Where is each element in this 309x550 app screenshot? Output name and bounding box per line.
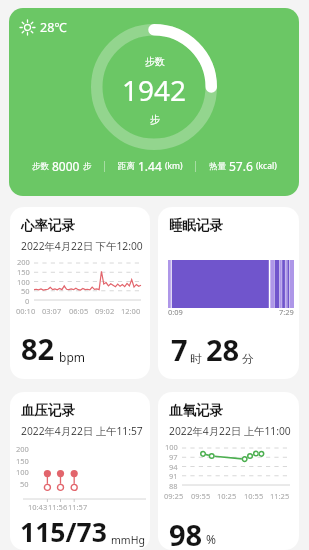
staticText: 2022年4月22日 下午12:00 — [21, 239, 143, 253]
other: Weather — [20, 20, 35, 35]
staticText: (km) — [165, 160, 183, 172]
staticText: 睡眠记录 — [169, 217, 223, 234]
staticText: 1942 — [122, 71, 187, 109]
staticText: 06:05 — [69, 306, 89, 316]
staticText: 97 — [169, 452, 178, 460]
staticText: 8000 — [52, 158, 80, 174]
staticText: mmHg — [111, 533, 145, 547]
staticText: 28℃ — [40, 19, 67, 36]
staticText: 步 — [150, 113, 160, 126]
staticText: 时 — [190, 352, 202, 366]
staticText: 1.44 — [138, 158, 162, 174]
staticText: 00:10 — [16, 306, 36, 316]
staticText: 分 — [242, 352, 254, 366]
staticText: 150 — [16, 456, 29, 466]
button[interactable]: 血压记录 — [10, 392, 150, 550]
staticText: 步数 — [32, 161, 49, 172]
button[interactable]: Weather — [9, 8, 299, 196]
staticText: 09:02 — [95, 306, 115, 316]
staticText: 200 — [17, 257, 30, 265]
staticText: 10:43 — [28, 502, 48, 512]
staticText: 150 — [17, 267, 30, 275]
staticText: 82 — [21, 329, 55, 368]
staticText: 09:55 — [191, 491, 211, 501]
staticText: % — [206, 531, 216, 547]
staticText: 心率记录 — [21, 217, 75, 234]
staticText: 10:55 — [244, 491, 264, 501]
staticText: 50 — [20, 479, 29, 489]
staticText: 09:25 — [164, 491, 184, 501]
staticText: bpm — [59, 349, 85, 365]
staticText: 血氧记录 — [169, 402, 223, 419]
staticText: 7 — [171, 330, 188, 369]
staticText: 0:09 — [168, 307, 183, 317]
staticText: 100 — [165, 442, 178, 450]
staticText: 10:25 — [217, 491, 237, 501]
staticText: 100 — [17, 277, 30, 285]
staticText: (kcal) — [256, 160, 277, 172]
staticText: 91 — [169, 471, 178, 479]
staticText: 2022年4月22日 上午11:57 — [21, 424, 143, 438]
staticText: 100 — [16, 467, 29, 477]
staticText: 28 — [206, 330, 240, 369]
staticText: 50 — [21, 286, 30, 294]
staticText: 步 — [83, 161, 92, 172]
staticText: 距离 — [118, 161, 135, 172]
staticText: 2022年4月22日 上午11:00 — [169, 424, 291, 438]
staticText: 11:57 — [68, 502, 88, 512]
staticText: 94 — [169, 462, 178, 470]
button[interactable]: 心率记录 — [10, 207, 150, 379]
staticText: 7:29 — [279, 307, 294, 317]
staticText: 血压记录 — [21, 402, 75, 419]
staticText: 115/73 — [20, 514, 107, 550]
staticText: 88 — [169, 481, 178, 489]
staticText: 0 — [25, 296, 30, 304]
staticText: 98 — [169, 515, 203, 550]
staticText: 57.6 — [229, 158, 253, 174]
staticText: 03:07 — [42, 306, 62, 316]
staticText: 12:00 — [121, 306, 141, 316]
staticText: 热量 — [209, 161, 226, 172]
staticText: 步数 — [145, 55, 165, 68]
button[interactable]: 血氧记录 — [158, 392, 299, 550]
staticText: 11:25 — [270, 491, 290, 501]
staticText: 11:56 — [48, 502, 68, 512]
staticText: 200 — [16, 444, 29, 454]
button[interactable]: 睡眠记录 — [158, 207, 299, 379]
